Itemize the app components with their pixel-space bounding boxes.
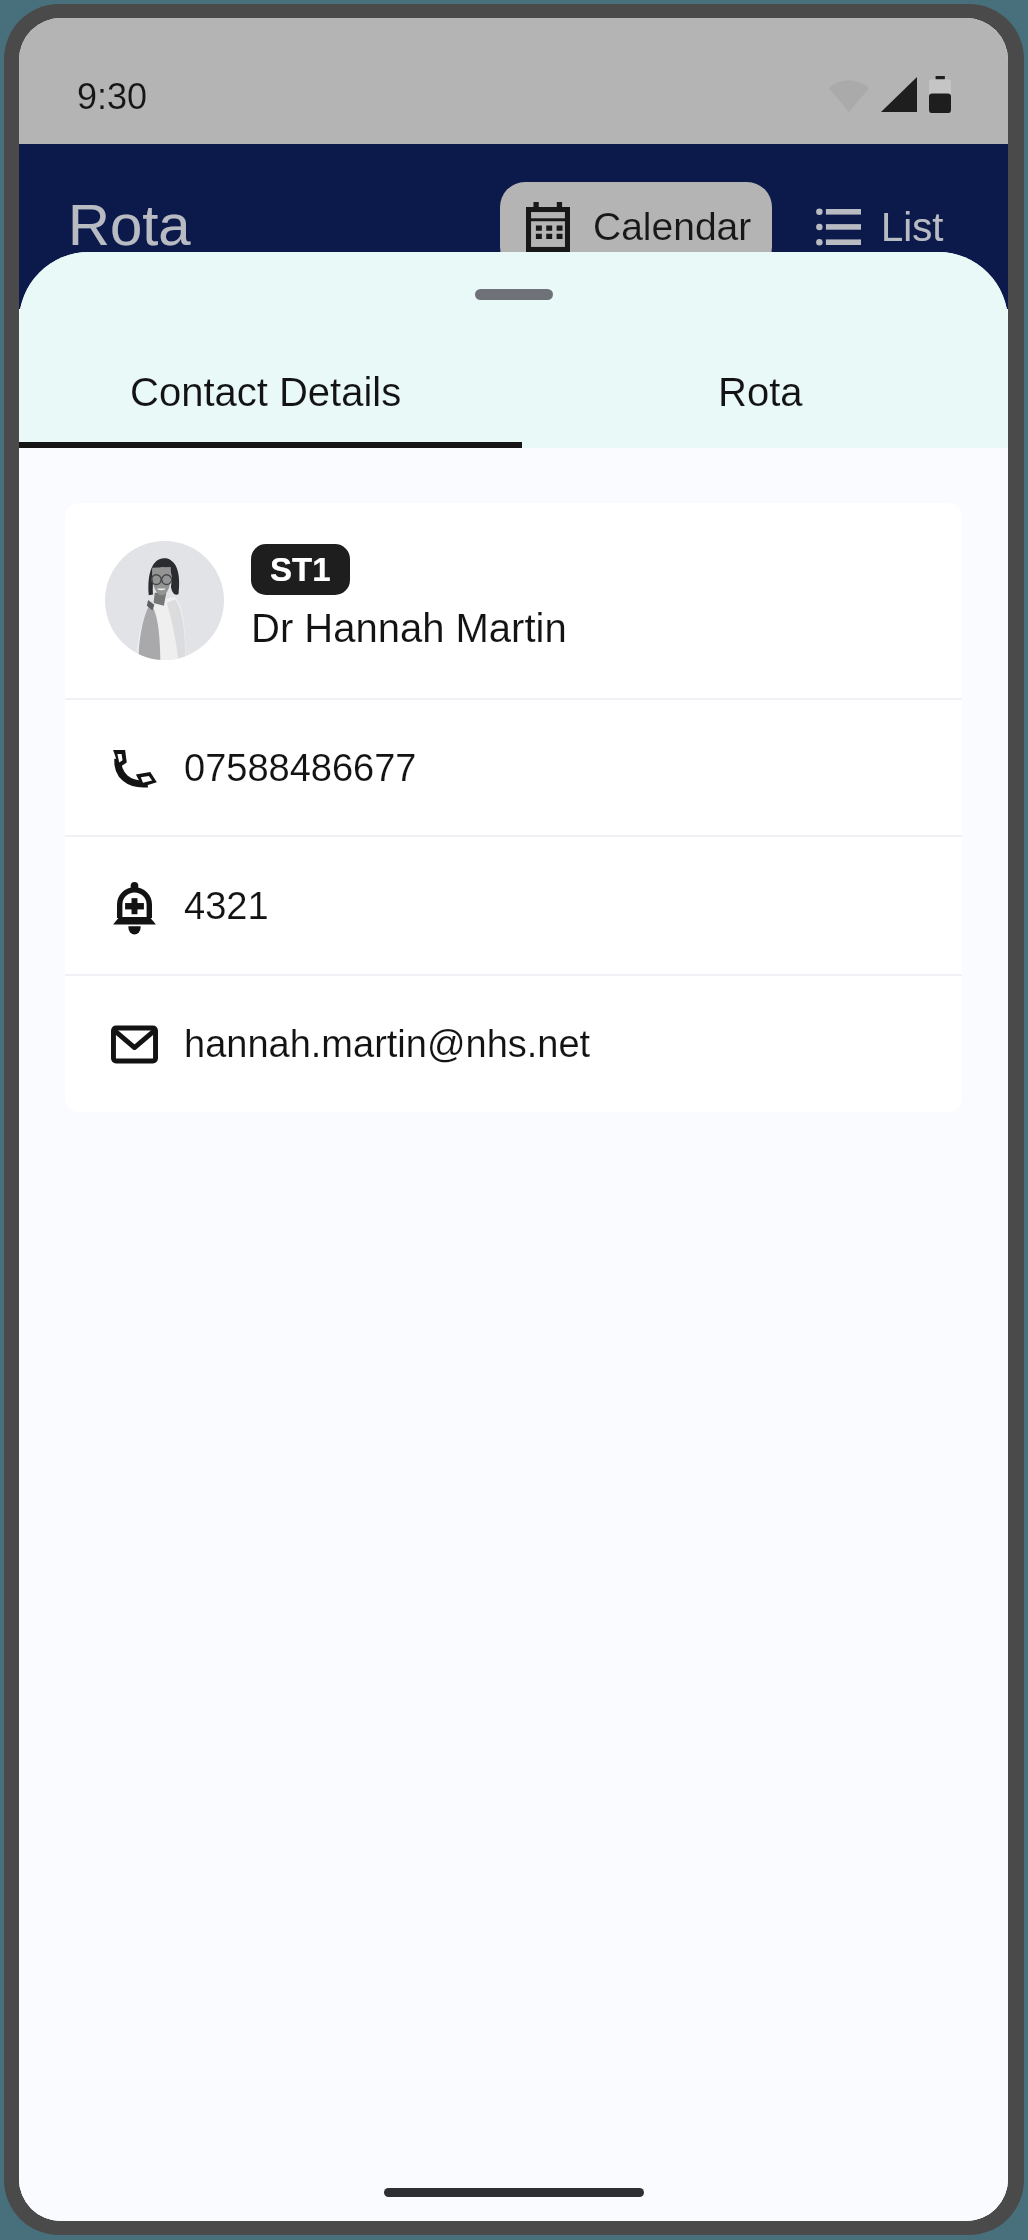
staticText: hannah.martin@nhs.net	[184, 1023, 591, 1065]
button[interactable]: hannah.martin@nhs.net	[65, 976, 962, 1112]
staticText: List	[881, 205, 944, 250]
staticText: 07588486677	[184, 747, 417, 789]
staticText: Dr Hannah Martin	[251, 606, 567, 651]
staticText: Contact Details	[130, 370, 402, 415]
staticText: 4321	[184, 885, 269, 927]
staticText: 9:30	[77, 76, 148, 116]
staticText: ST1	[270, 551, 331, 588]
button[interactable]: List	[797, 182, 948, 272]
button[interactable]: Calendar	[500, 182, 772, 272]
staticText: Calendar	[593, 205, 752, 249]
button[interactable]: Drag handle	[475, 289, 553, 300]
staticText: Rota	[718, 370, 803, 415]
button[interactable]: 07588486677	[65, 700, 962, 835]
staticText: Rota	[68, 192, 191, 257]
button[interactable]: Rota	[513, 252, 1008, 448]
button[interactable]: 4321	[65, 837, 962, 974]
button[interactable]: Contact Details	[19, 252, 513, 448]
